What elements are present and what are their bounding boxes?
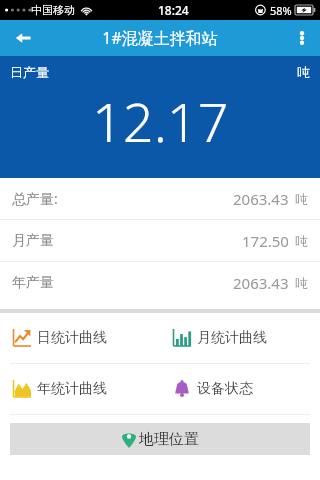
button[interactable]: 月统计曲线 <box>160 313 320 363</box>
staticText: 设备状态 <box>197 380 253 398</box>
button[interactable]: 日统计曲线 <box>0 313 160 363</box>
staticText: 1#混凝土拌和站 <box>102 27 218 49</box>
staticText: 月产量 <box>12 232 54 250</box>
staticText: 总产量: <box>12 189 58 208</box>
staticText: 地理位置 <box>139 430 199 449</box>
staticText: 吨 <box>295 191 308 207</box>
staticText: 18:24 <box>158 2 189 18</box>
button[interactable]: Back <box>0 20 46 56</box>
button[interactable]: 年统计曲线 <box>0 364 160 414</box>
staticText: 2063.43 <box>233 273 289 293</box>
staticText: 吨 <box>295 233 308 249</box>
staticText: 吨 <box>297 64 310 80</box>
staticText: 年产量 <box>12 274 54 292</box>
staticText: 吨 <box>295 275 308 291</box>
staticText: 月统计曲线 <box>197 329 267 347</box>
staticText: 2063.43 <box>233 189 289 209</box>
button[interactable]: More options <box>284 20 320 56</box>
staticText: 12.17 <box>92 84 229 158</box>
button[interactable]: 总产量: <box>0 178 320 219</box>
button[interactable]: 年产量 <box>0 262 320 303</box>
staticText: 172.50 <box>242 231 289 251</box>
staticText: 日统计曲线 <box>37 329 107 347</box>
button[interactable]: 月产量 <box>0 220 320 261</box>
staticText: 日产量 <box>10 64 49 80</box>
button[interactable]: 地理位置 <box>10 423 310 455</box>
staticText: 年统计曲线 <box>37 380 107 398</box>
staticText: 58% <box>270 3 292 18</box>
staticText: 中国移动 <box>31 3 75 17</box>
button[interactable]: 设备状态 <box>160 364 320 414</box>
